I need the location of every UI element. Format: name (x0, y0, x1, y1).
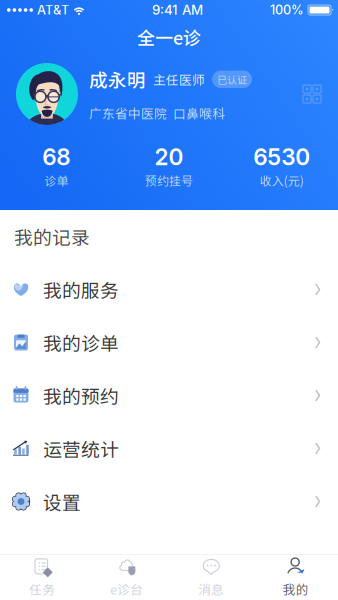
staticText: 9:41 AM (152, 2, 203, 18)
staticText: 收入(元) (260, 172, 304, 189)
staticText: 我的记录 (14, 223, 90, 250)
staticText: 我的服务 (43, 276, 119, 303)
staticText: 运营统计 (43, 435, 119, 462)
staticText: 20 (154, 143, 183, 171)
button[interactable]: 我的服务 (0, 263, 338, 316)
staticText: 6530 (253, 143, 310, 171)
staticText: 已认证 (217, 72, 247, 87)
staticText: 广东省中医院 口鼻喉科 (89, 104, 225, 122)
button[interactable]: e诊台 (84, 550, 169, 600)
staticText: 主任医师 (153, 70, 205, 88)
staticText: AT&T (37, 2, 69, 18)
staticText: e诊台 (110, 580, 143, 598)
staticText: 全一e诊 (137, 24, 201, 50)
staticText: 成永明 (89, 66, 146, 93)
staticText: 消息 (198, 580, 224, 598)
staticText: 我的预约 (43, 382, 119, 409)
staticText: 任务 (29, 580, 55, 598)
staticText: 我的诊单 (43, 329, 119, 356)
staticText: 68 (42, 143, 70, 171)
staticText: 诊单 (44, 172, 68, 189)
staticText: 设置 (43, 488, 81, 515)
button[interactable]: 任务 (0, 550, 84, 600)
staticText: 预约挂号 (145, 172, 193, 189)
button[interactable]: 消息 (169, 550, 253, 600)
button[interactable]: 我的诊单 (0, 316, 338, 369)
staticText: 我的 (283, 580, 309, 598)
button[interactable]: 运营统计 (0, 422, 338, 475)
button[interactable]: 设置 (0, 475, 338, 528)
staticText: 100% (270, 2, 304, 18)
button[interactable]: 我的 (253, 550, 338, 600)
button[interactable]: 我的预约 (0, 369, 338, 422)
